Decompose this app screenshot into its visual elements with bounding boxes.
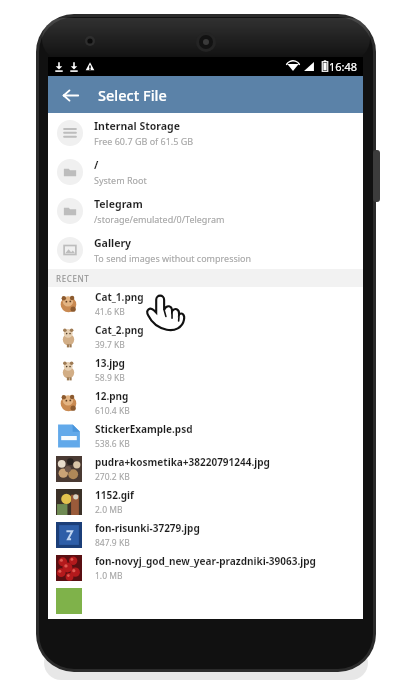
button[interactable]: 12.png [48,386,363,419]
staticText: Free 60.7 GB of 61.5 GB [94,135,194,147]
staticText: 41.6 KB [95,306,125,318]
staticText: To send images without compression [94,252,252,264]
staticText: Cat_2.png [95,323,144,337]
staticText: pudra+kosmetika+38220791244.jpg [95,455,270,469]
staticText: 13.jpg [95,356,125,370]
button[interactable] [48,584,363,617]
button[interactable]: pudra+kosmetika+38220791244.jpg [48,452,363,485]
staticText: 610.4 KB [95,405,130,417]
staticText: Select File [98,85,167,105]
staticText: 58.9 KB [95,372,125,384]
button[interactable]: 1152.gif [48,485,363,518]
staticText: RECENT [56,273,90,284]
staticText: 1.0 MB [95,570,123,582]
staticText: Internal Storage [94,119,180,133]
staticText: fon-novyj_god_new_year-prazdniki-39063.j… [95,554,316,568]
button[interactable]: Telegram [48,191,363,230]
staticText: / [94,158,99,172]
staticText: 39.7 KB [95,339,125,351]
button[interactable]: fon-novyj_god_new_year-prazdniki-39063.j… [48,551,363,584]
staticText: Cat_1.png [95,290,144,304]
staticText: 2.0 MB [95,504,123,516]
button[interactable]: Cat_1.png [48,287,363,320]
staticText: Telegram [94,197,143,211]
staticText: 270.2 KB [95,471,130,483]
staticText: Gallery [94,236,132,250]
button[interactable]: Back [55,80,85,110]
staticText: fon-risunki-37279.jpg [95,521,200,535]
staticText: 12.png [95,389,129,403]
staticText: 847.9 KB [95,537,130,549]
staticText: 16:48 [329,59,358,74]
button[interactable]: / [48,152,363,191]
staticText: 1152.gif [95,488,134,502]
staticText: System Root [94,174,147,186]
button[interactable]: Internal Storage [48,113,363,152]
staticText: 538.6 KB [95,438,130,450]
button[interactable]: Gallery [48,230,363,269]
staticText: /storage/emulated/0/Telegram [94,213,225,225]
staticText: StickerExample.psd [95,422,193,436]
button[interactable]: fon-risunki-37279.jpg [48,518,363,551]
button[interactable]: Cat_2.png [48,320,363,353]
button[interactable]: StickerExample.psd [48,419,363,452]
button[interactable]: 13.jpg [48,353,363,386]
